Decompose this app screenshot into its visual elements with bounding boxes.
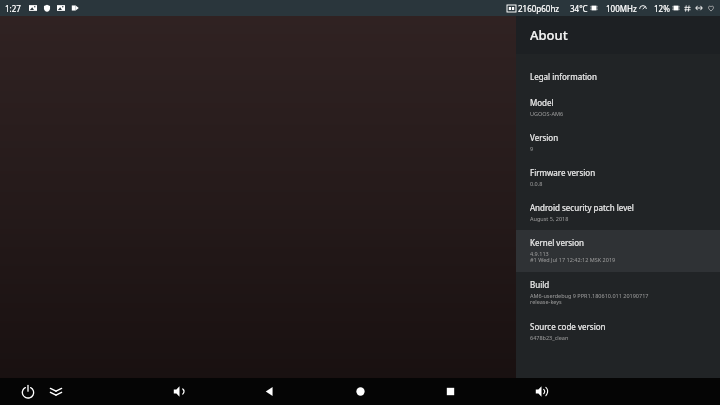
staticText: Legal information (530, 71, 597, 82)
staticText: Build (530, 279, 550, 290)
button[interactable]: Build (516, 272, 720, 314)
button[interactable]: Model (516, 90, 720, 125)
button[interactable]: Volume up (519, 378, 563, 405)
button[interactable]: Expand (36, 378, 76, 405)
staticText: Model (530, 97, 554, 108)
staticText: UGOOS-AM6 (530, 110, 564, 117)
staticText: About (530, 26, 568, 44)
staticText: Firmware version (530, 167, 596, 178)
button[interactable]: Back (247, 378, 291, 405)
button[interactable]: Kernel version (516, 230, 720, 272)
staticText: 100MHz (606, 3, 637, 14)
staticText: 1:27 (5, 3, 21, 14)
staticText: Source code version (530, 321, 606, 332)
button[interactable]: Power (6, 378, 50, 405)
staticText: Version (530, 132, 559, 143)
staticText: 12% (654, 3, 670, 14)
staticText: 2160p60hz (518, 3, 560, 14)
button[interactable]: Recent apps (428, 378, 472, 405)
button[interactable]: Legal information (516, 64, 720, 90)
button[interactable]: Android security patch level (516, 195, 720, 230)
staticText: 9 (530, 145, 534, 152)
staticText: AM6-userdebug 9 PPR1.180610.011 20190717… (530, 292, 649, 306)
staticText: 6478b23_clean (530, 334, 569, 341)
button[interactable]: Volume down (157, 378, 201, 405)
staticText: 4.9.113 #1 Wed Jul 17 12:42:12 MSK 2019 (530, 250, 616, 264)
button[interactable]: Source code version (516, 314, 720, 349)
staticText: 0.0.8 (530, 180, 543, 187)
button[interactable]: Version (516, 125, 720, 160)
staticText: Android security patch level (530, 202, 634, 213)
button[interactable]: Home (338, 378, 382, 405)
button[interactable]: Firmware version (516, 160, 720, 195)
staticText: August 5, 2018 (530, 215, 569, 222)
staticText: Kernel version (530, 237, 584, 248)
staticText: 34°C (570, 3, 588, 14)
